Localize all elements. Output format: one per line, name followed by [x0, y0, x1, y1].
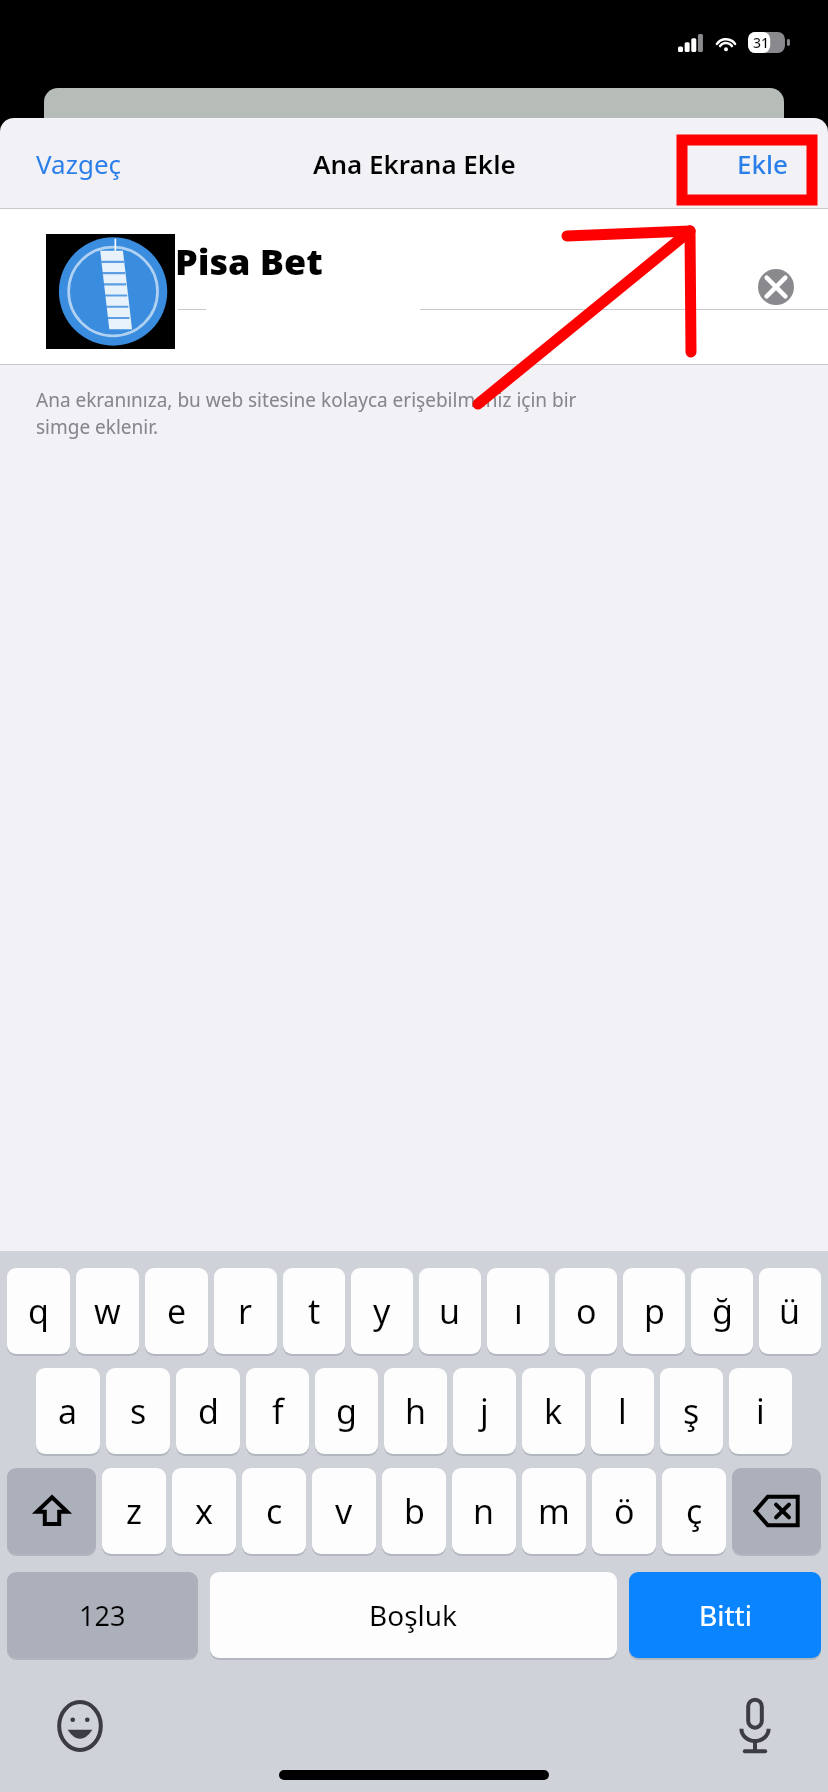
staticText: c [266, 1488, 283, 1534]
button[interactable]: w [76, 1268, 139, 1356]
staticText: z [126, 1488, 142, 1534]
button[interactable]: Temizle [752, 263, 800, 311]
button[interactable]: a [36, 1368, 100, 1456]
staticText: 123 [79, 1597, 126, 1634]
staticText: q [28, 1288, 49, 1334]
staticText: b [404, 1488, 425, 1534]
button[interactable]: b [382, 1468, 446, 1556]
staticText: Boşluk [369, 1596, 458, 1634]
button[interactable]: Shift [7, 1468, 96, 1556]
staticText: r [238, 1288, 253, 1334]
button[interactable]: z [102, 1468, 166, 1556]
button[interactable]: f [246, 1368, 309, 1456]
button[interactable]: ü [759, 1268, 821, 1356]
button[interactable]: x [172, 1468, 236, 1556]
button[interactable]: k [522, 1368, 585, 1456]
staticText: n [473, 1488, 495, 1534]
staticText: y [373, 1288, 391, 1334]
button[interactable]: Ekle [721, 134, 804, 193]
staticText: l [618, 1388, 627, 1434]
staticText: Bitti [699, 1596, 752, 1634]
button[interactable]: j [453, 1368, 516, 1456]
staticText: d [198, 1388, 219, 1434]
button[interactable]: ğ [691, 1268, 753, 1356]
button[interactable]: v [312, 1468, 376, 1556]
staticText: f [272, 1388, 284, 1434]
staticText: ç [686, 1488, 703, 1534]
button[interactable]: i [729, 1368, 792, 1456]
button[interactable]: e [145, 1268, 208, 1356]
staticText: Ekle [737, 146, 788, 181]
staticText: o [576, 1288, 597, 1334]
other: Shift [34, 1493, 70, 1529]
staticText: g [336, 1388, 357, 1434]
staticText: a [58, 1388, 78, 1434]
button[interactable]: g [315, 1368, 378, 1456]
button[interactable]: l [591, 1368, 654, 1456]
button[interactable]: Dikte [730, 1690, 780, 1762]
button[interactable]: Vazgeç [18, 134, 140, 193]
button[interactable]: s [106, 1368, 170, 1456]
staticText: i [756, 1388, 765, 1434]
button[interactable]: u [419, 1268, 481, 1356]
staticText: h [405, 1388, 427, 1434]
button[interactable]: ç [662, 1468, 726, 1556]
button[interactable]: r [214, 1268, 277, 1356]
staticText: t [308, 1288, 321, 1334]
button[interactable]: m [522, 1468, 586, 1556]
button[interactable]: q [7, 1268, 70, 1356]
staticText: Ana ekranınıza, bu web sitesine kolayca … [36, 387, 577, 440]
staticText: Ana Ekrana Ekle [313, 146, 516, 181]
staticText: s [130, 1388, 147, 1434]
button[interactable]: Sil [732, 1468, 821, 1556]
staticText: ö [614, 1488, 635, 1534]
button[interactable]: o [555, 1268, 617, 1356]
staticText: ü [779, 1288, 801, 1334]
button[interactable]: ş [660, 1368, 723, 1456]
button[interactable]: n [452, 1468, 516, 1556]
button[interactable]: Emoji [46, 1692, 114, 1760]
button[interactable]: c [242, 1468, 306, 1556]
button[interactable]: ö [592, 1468, 656, 1556]
staticText: ı [514, 1288, 523, 1334]
staticText: e [167, 1288, 187, 1334]
staticText: w [94, 1288, 121, 1334]
staticText: ş [683, 1388, 700, 1434]
staticText: Pisa Bet [175, 237, 323, 286]
staticText: 31 [753, 33, 770, 52]
button[interactable]: p [623, 1268, 685, 1356]
button[interactable]: ı [487, 1268, 549, 1356]
staticText: Vazgeç [36, 146, 122, 181]
button[interactable]: t [283, 1268, 345, 1356]
button[interactable]: 123 [7, 1572, 198, 1660]
staticText: k [544, 1388, 563, 1434]
staticText: ğ [712, 1288, 733, 1334]
button[interactable]: d [176, 1368, 240, 1456]
staticText: u [439, 1288, 461, 1334]
button[interactable]: Boşluk [210, 1572, 617, 1660]
button[interactable]: y [351, 1268, 413, 1356]
button[interactable]: h [384, 1368, 447, 1456]
staticText: x [195, 1488, 213, 1534]
button[interactable]: Bitti [629, 1572, 821, 1660]
staticText: v [335, 1488, 353, 1534]
staticText: m [538, 1488, 570, 1534]
other: Sil [754, 1494, 800, 1528]
staticText: p [644, 1288, 665, 1334]
staticText: j [480, 1388, 489, 1434]
